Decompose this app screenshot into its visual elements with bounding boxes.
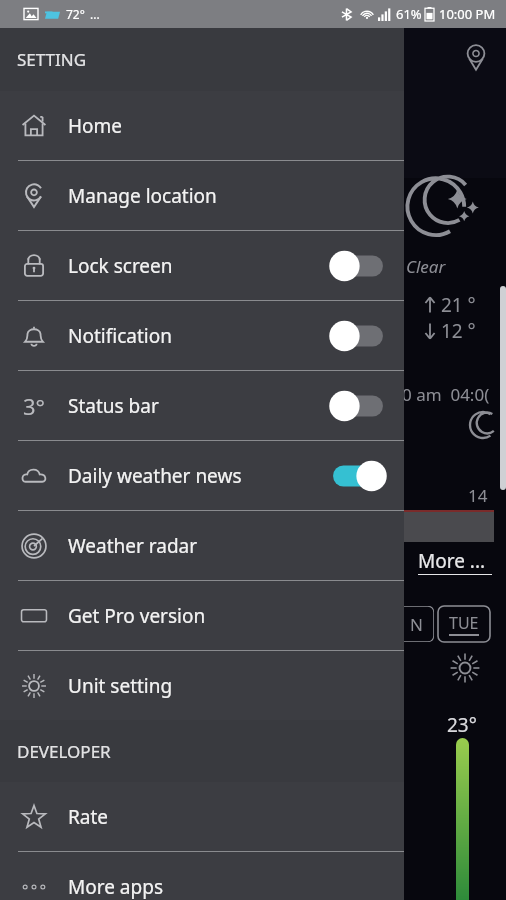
button[interactable]: 3° bbox=[0, 371, 404, 440]
staticText: Notification bbox=[68, 323, 326, 349]
staticText: Weather radar bbox=[68, 533, 404, 559]
staticText: 3° bbox=[23, 391, 46, 421]
staticText: Manage location bbox=[68, 183, 404, 209]
staticText: Lock screen bbox=[68, 253, 326, 279]
button[interactable]: Notification bbox=[0, 301, 404, 370]
staticText: 23° bbox=[447, 712, 477, 738]
button[interactable]: On bbox=[326, 457, 390, 495]
button[interactable]: Off bbox=[326, 317, 390, 355]
staticText: 12 ° bbox=[436, 318, 476, 344]
button[interactable]: More apps bbox=[0, 852, 404, 900]
staticText: ... bbox=[90, 6, 100, 22]
staticText: TUE bbox=[449, 612, 479, 634]
staticText: DEVELOPER bbox=[17, 740, 111, 763]
button[interactable]: Unit setting bbox=[0, 651, 404, 720]
staticText: Daily weather news bbox=[68, 463, 326, 489]
staticText: 21 ° bbox=[436, 292, 476, 318]
staticText: SETTING bbox=[17, 48, 87, 71]
staticText: Status bar bbox=[68, 393, 326, 419]
staticText: Home bbox=[68, 113, 404, 139]
button[interactable]: Weather radar bbox=[0, 511, 404, 580]
staticText: 61% bbox=[396, 5, 422, 23]
staticText: 10:00 PM bbox=[439, 5, 496, 23]
button[interactable]: Lock screen bbox=[0, 231, 404, 300]
button[interactable]: Daily weather news bbox=[0, 441, 404, 510]
staticText: Clear bbox=[406, 255, 446, 278]
button[interactable]: Manage location bbox=[0, 161, 404, 230]
button[interactable]: Off bbox=[326, 387, 390, 425]
button[interactable]: Off bbox=[326, 247, 390, 285]
staticText: More apps bbox=[68, 874, 404, 900]
staticText: Get Pro version bbox=[68, 603, 404, 629]
other: Location bbox=[462, 44, 490, 72]
button[interactable]: TUE bbox=[438, 606, 490, 642]
staticText: 0 am 04:0( bbox=[402, 383, 490, 406]
staticText: N bbox=[410, 613, 423, 636]
staticText: More ... bbox=[418, 548, 486, 574]
button[interactable]: Home bbox=[0, 91, 404, 160]
staticText: 72° bbox=[66, 6, 85, 22]
staticText: Unit setting bbox=[68, 673, 404, 699]
staticText: 14 bbox=[468, 484, 488, 507]
staticText: Rate bbox=[68, 804, 404, 830]
button[interactable]: Get Pro version bbox=[0, 581, 404, 650]
button[interactable]: Rate bbox=[0, 782, 404, 851]
